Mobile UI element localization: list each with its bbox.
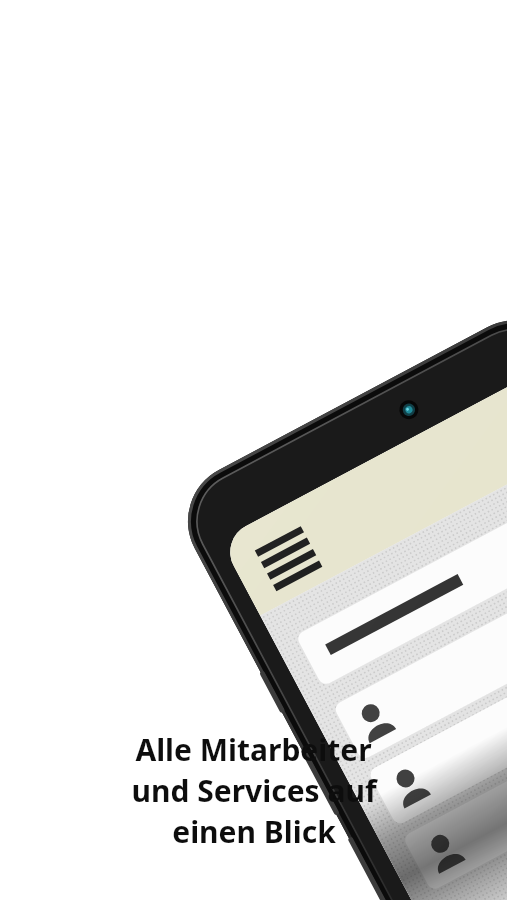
button[interactable]: App preview on phone: [0, 0, 507, 900]
staticText: Alle Mitarbeiter: [135, 729, 372, 770]
staticText: und Services auf: [131, 770, 377, 811]
staticText: einen Blick: [172, 811, 336, 852]
